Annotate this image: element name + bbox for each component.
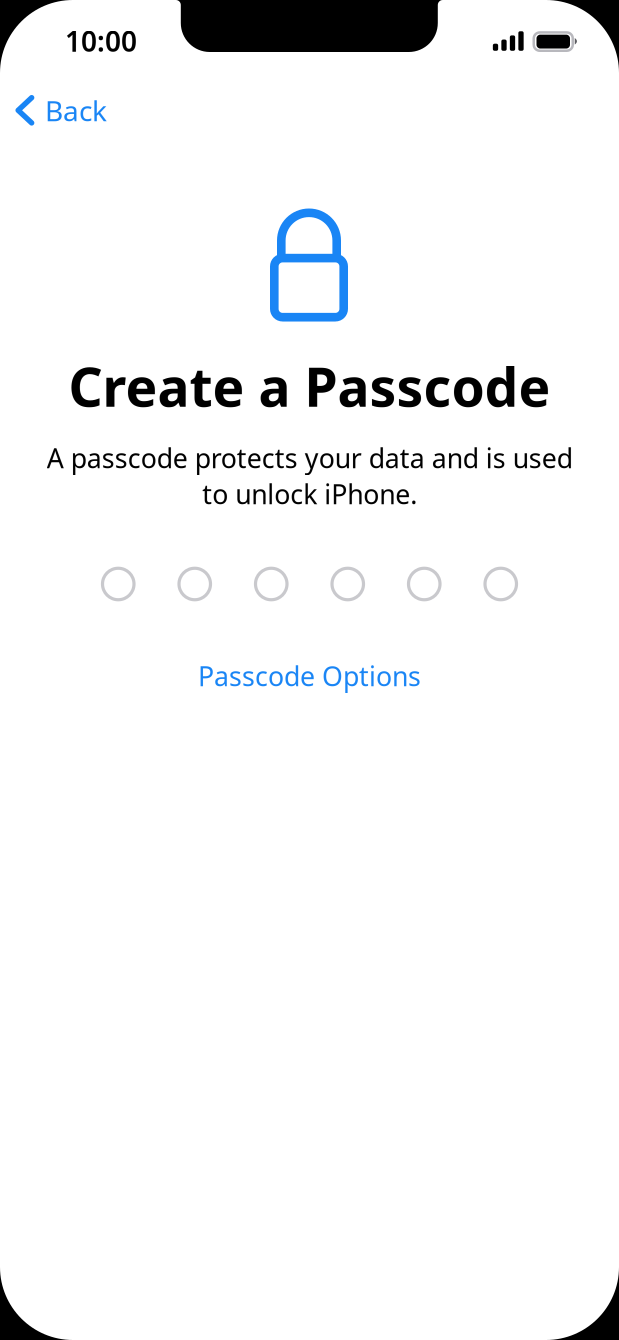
staticText: Create a Passcode — [68, 351, 550, 421]
staticText: Back — [45, 92, 107, 129]
staticText: A passcode protects your data and is use… — [46, 440, 572, 512]
staticText: Passcode Options — [198, 658, 421, 694]
button[interactable]: Passcode Options — [178, 647, 441, 705]
button[interactable]: Back — [1, 80, 125, 141]
staticText: 10:00 — [65, 22, 137, 60]
